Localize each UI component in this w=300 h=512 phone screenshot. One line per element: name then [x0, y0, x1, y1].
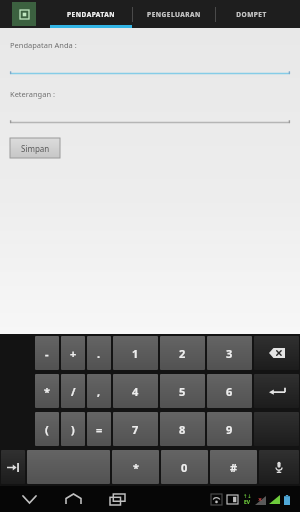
- button[interactable]: 4: [113, 374, 158, 408]
- button[interactable]: tab: [1, 450, 25, 484]
- staticText: Pendapatan Anda :: [10, 40, 77, 50]
- button[interactable]: 9: [207, 412, 252, 446]
- button[interactable]: [27, 450, 110, 484]
- button[interactable]: Simpan: [10, 138, 60, 158]
- staticText: PENGELUARAN: [147, 10, 201, 19]
- button[interactable]: App icon: [12, 2, 36, 26]
- staticText: 2: [179, 346, 186, 361]
- staticText: -: [45, 346, 49, 361]
- button[interactable]: /: [61, 374, 85, 408]
- button[interactable]: DOMPET: [216, 0, 286, 28]
- button[interactable]: 3: [207, 336, 252, 370]
- staticText: ↑↓: [243, 493, 252, 499]
- button[interactable]: 0: [161, 450, 208, 484]
- button[interactable]: #: [210, 450, 257, 484]
- staticText: 9: [226, 422, 233, 437]
- button[interactable]: PENDAPATAN: [50, 0, 132, 28]
- button[interactable]: Recent apps: [102, 486, 132, 512]
- staticText: 7: [132, 422, 139, 437]
- staticText: 4: [132, 384, 139, 399]
- staticText: ): [71, 422, 75, 437]
- button[interactable]: ,: [87, 374, 111, 408]
- staticText: #: [230, 460, 238, 475]
- button[interactable]: mic: [259, 450, 299, 484]
- staticText: 6: [226, 384, 233, 399]
- staticText: 1: [132, 346, 139, 361]
- button[interactable]: (: [35, 412, 59, 446]
- staticText: Keterangan :: [10, 89, 56, 99]
- button[interactable]: 6: [207, 374, 252, 408]
- staticText: =: [96, 422, 103, 437]
- staticText: Simpan: [21, 143, 50, 154]
- button[interactable]: +: [61, 336, 85, 370]
- button[interactable]: [254, 412, 299, 446]
- staticText: .: [97, 346, 101, 361]
- button[interactable]: 7: [113, 412, 158, 446]
- staticText: PENDAPATAN: [67, 10, 115, 19]
- staticText: *: [133, 460, 139, 475]
- staticText: EV: [244, 499, 251, 506]
- staticText: ,: [97, 384, 101, 399]
- staticText: DOMPET: [236, 10, 267, 19]
- button[interactable]: PENGELUARAN: [133, 0, 215, 28]
- button[interactable]: 1: [113, 336, 158, 370]
- button[interactable]: *: [35, 374, 59, 408]
- button[interactable]: 8: [160, 412, 205, 446]
- staticText: (: [45, 422, 49, 437]
- button[interactable]: -: [35, 336, 59, 370]
- button[interactable]: 5: [160, 374, 205, 408]
- staticText: 3: [226, 346, 233, 361]
- staticText: +: [70, 346, 77, 361]
- button[interactable]: ): [61, 412, 85, 446]
- button[interactable]: Hide keyboard: [14, 486, 44, 512]
- button[interactable]: Home: [58, 486, 88, 512]
- button[interactable]: 2: [160, 336, 205, 370]
- button[interactable]: *: [112, 450, 159, 484]
- staticText: 0: [181, 460, 188, 475]
- staticText: *: [44, 384, 50, 399]
- staticText: /: [71, 384, 76, 399]
- button[interactable]: .: [87, 336, 111, 370]
- staticText: 5: [179, 384, 186, 399]
- button[interactable]: backspace: [254, 336, 299, 370]
- staticText: ×: [258, 495, 263, 505]
- button[interactable]: enter: [254, 374, 299, 408]
- staticText: 8: [179, 422, 186, 437]
- button[interactable]: =: [87, 412, 111, 446]
